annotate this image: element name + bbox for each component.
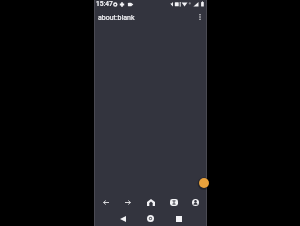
button[interactable]: Tabs	[163, 192, 184, 213]
button[interactable]: Back	[95, 192, 116, 213]
button[interactable]: More options	[193, 11, 206, 25]
staticText: 15:47	[96, 0, 113, 8]
button[interactable]: Home	[142, 210, 159, 226]
button[interactable]: Account	[185, 192, 206, 213]
button[interactable]: Back	[114, 210, 131, 226]
button[interactable]: Forward	[117, 192, 138, 213]
staticText: about:blank	[98, 14, 135, 22]
button[interactable]: Home	[140, 192, 161, 213]
button[interactable]: Recents	[170, 210, 187, 226]
button[interactable]: Open action	[197, 176, 211, 190]
